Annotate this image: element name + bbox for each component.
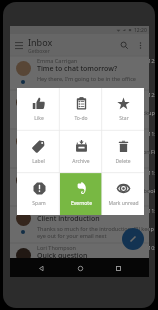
button[interactable]: Lori Thompson [10, 243, 149, 258]
button[interactable]: Compose [122, 228, 144, 250]
staticText: Like [34, 115, 44, 122]
button[interactable]: Nina Olsen [10, 168, 149, 206]
staticText: Quick question [37, 251, 88, 259]
staticText: Archive [72, 158, 90, 165]
button[interactable]: More options [133, 38, 147, 52]
staticText: 11:50 AM [148, 169, 155, 176]
staticText: Hey there, I'm going to be in the office [37, 75, 136, 82]
button[interactable]: To-do [60, 88, 102, 131]
staticText: Spam [32, 200, 46, 207]
button[interactable]: Search [115, 36, 133, 54]
staticText: Evernote [71, 200, 92, 207]
staticText: Time to chat tomorrow? [37, 64, 118, 74]
staticText: Sarah Milner [37, 91, 148, 98]
staticText: Label [32, 158, 45, 165]
button[interactable]: Archive [60, 131, 102, 173]
staticText: Nina Olsen [37, 169, 148, 176]
staticText: Thanks so much for the introduction. I'l… [37, 225, 155, 239]
staticText: Lori Thompson [37, 244, 148, 251]
staticText: 12:04 PM [148, 91, 155, 98]
staticText: 10:09 AM [148, 244, 155, 251]
button[interactable]: Peter Grant [10, 129, 149, 168]
staticText: Star [119, 115, 129, 122]
staticText: 12:37 PM [148, 57, 155, 64]
button[interactable]: Sarah Milner [10, 90, 149, 129]
staticText: Mark unread [108, 200, 139, 207]
button[interactable]: Evernote [60, 173, 102, 215]
staticText: Here's the plan for next week. Flights a… [37, 187, 155, 201]
button[interactable]: Recents [110, 260, 126, 276]
button[interactable]: Spam [17, 173, 60, 215]
staticText: A few of us are heading to the new place… [37, 148, 155, 162]
staticText: Delete [115, 158, 131, 165]
button[interactable]: Kamal Johnson [10, 206, 149, 243]
staticText: Lunch on Friday? [37, 137, 94, 147]
staticText: Peter Grant [37, 130, 148, 137]
button[interactable]: Menu [10, 36, 28, 54]
button[interactable]: Back [33, 260, 49, 276]
staticText: Inbox [28, 36, 53, 48]
button[interactable]: Mark unread [102, 173, 144, 215]
staticText: Kamal Johnson [37, 207, 148, 214]
staticText: Getboxer [28, 48, 50, 55]
staticText: Emma Carrigan [37, 57, 148, 64]
staticText: Trip itinerary [37, 176, 80, 186]
button[interactable]: Like [17, 88, 60, 131]
staticText: 11:42 AM [148, 207, 155, 214]
button[interactable]: Delete [102, 131, 144, 173]
button[interactable]: Emma Carrigan [10, 56, 149, 90]
button[interactable]: Home [72, 260, 88, 276]
staticText: To-do [74, 115, 88, 122]
staticText: 11:58 AM [148, 130, 155, 137]
staticText: I've attached the latest version of the … [37, 109, 155, 123]
staticText: Design review notes [37, 98, 105, 108]
button[interactable]: Label [17, 131, 60, 173]
button[interactable]: Star [102, 88, 144, 131]
staticText: 12:20 [134, 27, 147, 34]
staticText: Client introduction [37, 214, 100, 224]
